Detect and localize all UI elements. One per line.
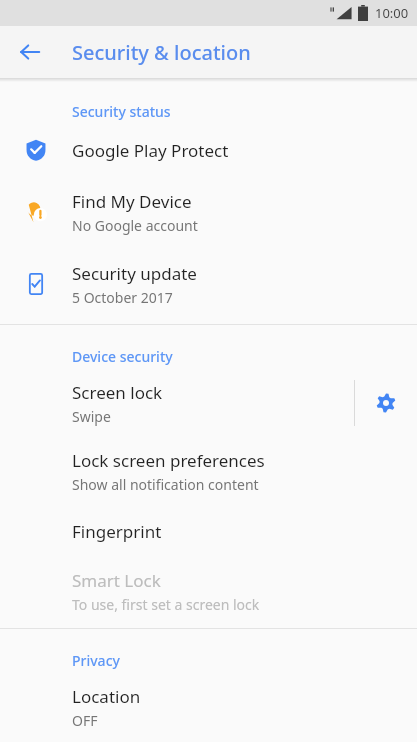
button[interactable]: Fingerprint — [0, 505, 417, 557]
staticText: Fingerprint — [72, 520, 162, 543]
staticText: 5 October 2017 — [72, 288, 173, 307]
staticText: Location — [72, 685, 141, 708]
button[interactable]: Security update — [0, 248, 417, 320]
button[interactable]: Screen lock settings — [355, 369, 417, 437]
staticText: Privacy — [72, 651, 120, 670]
staticText: To use, first set a screen lock — [72, 595, 260, 614]
button[interactable]: Back — [6, 28, 54, 76]
staticText: Security & location — [72, 39, 251, 66]
staticText: Security status — [72, 102, 171, 121]
button[interactable]: Lock screen preferences — [0, 437, 417, 505]
staticText: Google Play Protect — [72, 139, 229, 162]
staticText: Lock screen preferences — [72, 449, 265, 472]
button[interactable]: Location — [0, 673, 417, 741]
button[interactable]: Screen lock — [0, 369, 354, 437]
button[interactable]: Smart Lock — [0, 557, 417, 625]
staticText: Device security — [72, 347, 173, 366]
staticText: Security update — [72, 262, 197, 285]
staticText: Swipe — [72, 407, 111, 426]
button[interactable]: Google Play Protect — [0, 124, 417, 176]
staticText: No Google account — [72, 216, 198, 235]
button[interactable]: Find My Device — [0, 176, 417, 248]
staticText: Find My Device — [72, 190, 192, 213]
staticText: OFF — [72, 711, 98, 730]
staticText: Show all notification content — [72, 475, 259, 494]
staticText: 10:00 — [375, 4, 409, 22]
staticText: Screen lock — [72, 381, 163, 404]
staticText: Smart Lock — [72, 569, 161, 592]
